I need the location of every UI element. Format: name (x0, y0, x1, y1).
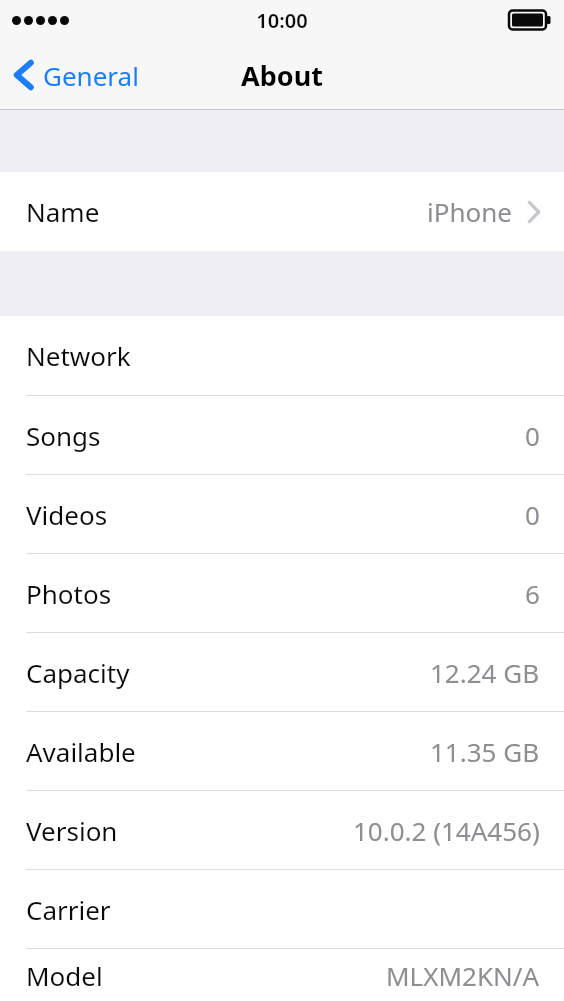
staticText: Model (26, 958, 103, 993)
staticText: Name (26, 194, 100, 229)
staticText: Version (26, 813, 118, 848)
other: Battery full (509, 9, 553, 31)
button[interactable]: Carrier (0, 870, 564, 948)
staticText: Photos (26, 576, 112, 611)
staticText: About (241, 57, 323, 94)
staticText: Carrier (26, 892, 111, 927)
button[interactable]: Capacity (0, 633, 564, 711)
button[interactable]: Photos (0, 554, 564, 632)
staticText: 10.0.2 (14A456) (353, 813, 540, 848)
staticText: 12.24 GB (430, 655, 540, 690)
staticText: Available (26, 734, 136, 769)
staticText: 0 (525, 418, 540, 453)
staticText: General (43, 58, 139, 93)
button[interactable]: Available (0, 712, 564, 790)
staticText: iPhone (427, 194, 512, 229)
staticText: 6 (525, 576, 540, 611)
staticText: 0 (525, 497, 540, 532)
button[interactable]: Network (0, 316, 564, 395)
button[interactable]: Model (0, 949, 564, 1001)
button[interactable]: General (0, 40, 155, 110)
staticText: Songs (26, 418, 101, 453)
staticText: Capacity (26, 655, 130, 690)
staticText: 11.35 GB (430, 734, 540, 769)
staticText: Videos (26, 497, 108, 532)
staticText: MLXM2KN/A (386, 958, 540, 993)
button[interactable]: Songs (0, 396, 564, 474)
button[interactable]: Videos (0, 475, 564, 553)
staticText: 10:00 (256, 7, 308, 34)
button[interactable]: Name (0, 172, 564, 251)
button[interactable]: Version (0, 791, 564, 869)
staticText: Network (26, 338, 131, 373)
